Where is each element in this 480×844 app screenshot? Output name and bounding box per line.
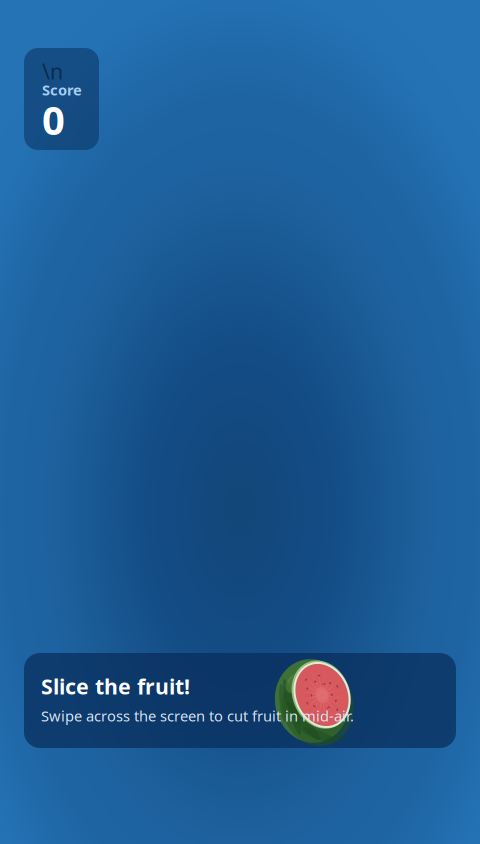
staticText: Score: [42, 80, 82, 99]
button[interactable]: \n: [24, 48, 99, 150]
button[interactable]: Slice the fruit!: [24, 653, 456, 748]
staticText: 0: [42, 93, 65, 146]
staticText: Slice the fruit!: [41, 672, 190, 700]
staticText: \n: [42, 57, 63, 85]
staticText: Swipe across the screen to cut fruit in …: [41, 706, 354, 725]
